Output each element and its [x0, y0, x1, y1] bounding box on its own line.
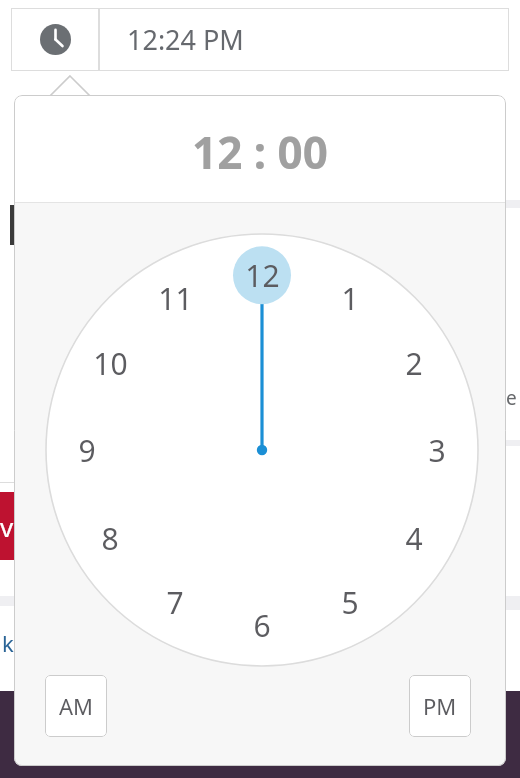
- staticText: 12: [245, 255, 280, 296]
- staticText: PM: [423, 691, 457, 721]
- staticText: 2: [405, 343, 423, 384]
- staticText: v: [0, 509, 14, 544]
- button[interactable]: 8: [84, 512, 136, 564]
- staticText: 1: [341, 278, 359, 319]
- staticText: 12 : 00: [192, 122, 328, 182]
- button[interactable]: 12: [236, 249, 288, 301]
- staticText: 10: [93, 343, 128, 384]
- staticText: 6: [253, 605, 271, 646]
- staticText: e: [506, 385, 517, 407]
- staticText: 3: [428, 430, 446, 471]
- staticText: 7: [166, 582, 184, 623]
- button[interactable]: 9: [61, 424, 113, 476]
- button[interactable]: 12:24 PM: [99, 8, 509, 71]
- staticText: 8: [101, 518, 119, 559]
- staticText: AM: [59, 691, 94, 721]
- button[interactable]: PM: [409, 675, 471, 737]
- button[interactable]: 5: [324, 576, 376, 628]
- button[interactable]: 12 : 00: [192, 122, 328, 182]
- staticText: 4: [405, 518, 423, 559]
- button[interactable]: 3: [411, 424, 463, 476]
- button[interactable]: 10: [84, 337, 136, 389]
- button[interactable]: 7: [149, 576, 201, 628]
- staticText: k: [2, 628, 14, 656]
- button[interactable]: 2: [388, 337, 440, 389]
- staticText: 9: [78, 430, 96, 471]
- staticText: 5: [341, 582, 359, 623]
- button[interactable]: 1: [324, 272, 376, 324]
- button[interactable]: AM: [45, 675, 107, 737]
- button[interactable]: Pick time: [11, 8, 99, 71]
- button[interactable]: 4: [388, 512, 440, 564]
- button[interactable]: 11: [149, 272, 201, 324]
- button[interactable]: 6: [236, 599, 288, 651]
- staticText: 11: [158, 278, 193, 319]
- staticText: 12:24 PM: [127, 21, 244, 58]
